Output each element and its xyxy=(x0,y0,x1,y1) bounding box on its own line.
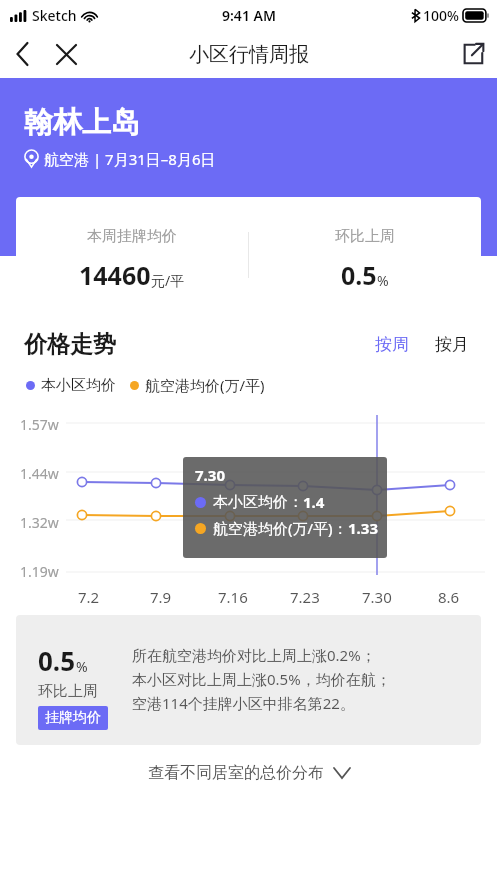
staticText: 1.57w xyxy=(20,415,59,434)
button[interactable]: 本周挂牌均价 xyxy=(16,197,481,312)
button[interactable]: Back xyxy=(0,32,44,76)
staticText: 按月 xyxy=(435,334,469,355)
button[interactable]: 按月 xyxy=(431,330,473,359)
staticText: 小区行情周报 xyxy=(189,42,309,67)
staticText: 1.4 xyxy=(303,492,325,512)
staticText: 1.32w xyxy=(20,513,59,532)
button[interactable]: 按周 xyxy=(371,330,413,359)
staticText: 空港114个挂牌小区中排名第22。 xyxy=(132,693,355,713)
staticText: 0.5 xyxy=(341,258,377,292)
staticText: 100% xyxy=(423,6,459,25)
button[interactable]: 0.5 xyxy=(16,615,481,745)
staticText: 7.16 xyxy=(218,587,248,607)
staticText: 7.9 xyxy=(150,587,172,607)
staticText: 本小区对比上周上涨0.5%，均价在航； xyxy=(132,669,391,689)
staticText: 航空港 | 7月31日–8月6日 xyxy=(44,149,216,169)
button[interactable]: 查看不同居室的总价分布 xyxy=(0,745,497,801)
staticText: 7.2 xyxy=(78,587,100,607)
staticText: 14460 xyxy=(79,258,151,292)
staticText: 按周 xyxy=(375,334,409,355)
staticText: 7.23 xyxy=(290,587,320,607)
button[interactable]: Share xyxy=(449,30,497,78)
staticText: 本周挂牌均价 xyxy=(87,227,177,246)
staticText: 挂牌均价 xyxy=(45,709,101,727)
staticText: 翰林上岛 xyxy=(24,104,140,141)
staticText: % xyxy=(76,657,88,676)
staticText: 本小区均价： xyxy=(213,493,303,512)
staticText: Sketch xyxy=(32,6,77,25)
staticText: 环比上周 xyxy=(38,682,98,701)
staticText: 环比上周 xyxy=(335,227,395,246)
staticText: % xyxy=(377,271,389,290)
staticText: 价格走势 xyxy=(24,330,116,359)
staticText: 9:41 AM xyxy=(222,6,276,25)
staticText: 元/平 xyxy=(151,271,185,290)
staticText: 本小区均价 xyxy=(41,376,116,395)
staticText: 所在航空港均价对比上周上涨0.2%； xyxy=(132,645,376,665)
staticText: 查看不同居室的总价分布 xyxy=(148,763,324,783)
button[interactable]: Close xyxy=(44,32,88,76)
staticText: 8.6 xyxy=(438,587,460,607)
staticText: 7.30 xyxy=(362,587,392,607)
staticText: 航空港均价(万/平)： xyxy=(213,518,348,538)
staticText: 1.44w xyxy=(20,464,59,483)
staticText: 1.33 xyxy=(348,518,378,538)
staticText: 1.19w xyxy=(20,562,59,581)
staticText: 0.5 xyxy=(38,643,76,678)
staticText: 航空港均价(万/平) xyxy=(145,375,265,395)
staticText: 7.30 xyxy=(195,465,225,485)
